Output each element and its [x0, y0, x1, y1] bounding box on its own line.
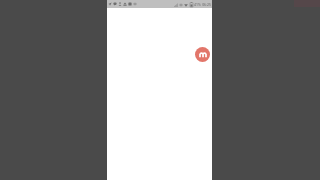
- staticText: 06:25: [202, 2, 211, 7]
- button[interactable]: App logo: [195, 47, 210, 62]
- staticText: 41%: [194, 2, 201, 7]
